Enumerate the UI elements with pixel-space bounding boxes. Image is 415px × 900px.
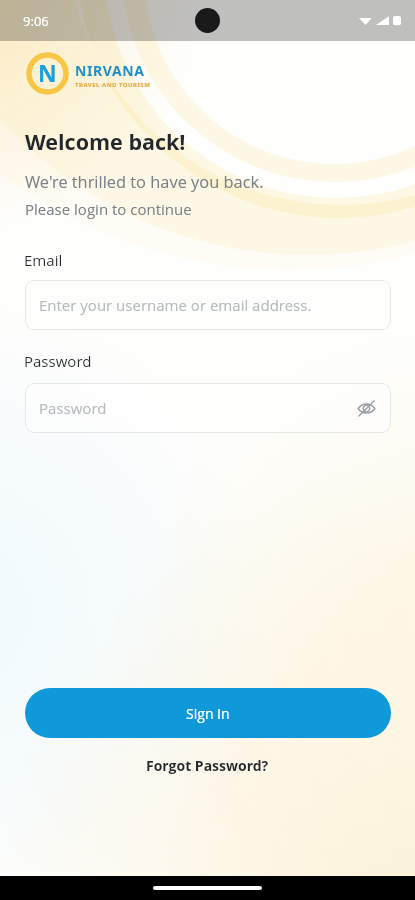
staticText: We're thrilled to have you back. xyxy=(25,170,264,192)
button[interactable]: Password xyxy=(25,383,391,433)
staticText: 9:06 xyxy=(23,12,49,30)
staticText: Forgot Password? xyxy=(146,756,269,775)
button[interactable]: Enter your username or email address. xyxy=(25,280,391,330)
button[interactable]: Sign In xyxy=(25,688,391,738)
button[interactable]: Forgot Password? xyxy=(138,753,277,778)
staticText: Enter your username or email address. xyxy=(39,295,312,315)
staticText: Password xyxy=(24,351,92,371)
button[interactable]: Show password xyxy=(353,395,379,421)
staticText: N xyxy=(38,57,57,88)
staticText: Please login to continue xyxy=(25,199,192,219)
staticText: TRAVEL AND TOURISM xyxy=(75,81,151,89)
staticText: Password xyxy=(39,398,107,418)
staticText: Sign In xyxy=(186,704,230,723)
staticText: NIRVANA xyxy=(75,61,145,80)
staticText: Email xyxy=(24,250,63,270)
staticText: Welcome back! xyxy=(25,127,186,156)
